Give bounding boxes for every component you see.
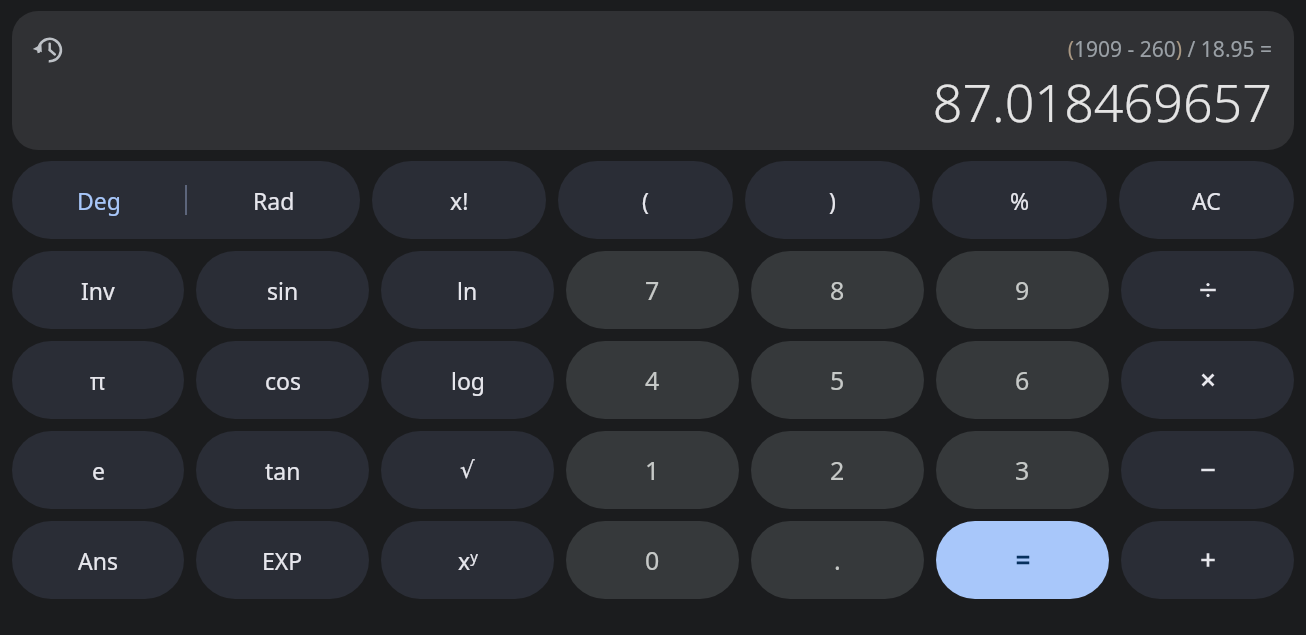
staticText: sin <box>267 275 299 306</box>
staticText: cos <box>265 365 301 396</box>
button[interactable]: ) <box>745 161 920 239</box>
button[interactable]: Minus <box>1121 431 1294 509</box>
button[interactable]: EXP <box>196 521 369 599</box>
button[interactable]: ln <box>381 251 554 329</box>
button[interactable]: 7 <box>566 251 739 329</box>
button[interactable]: History <box>28 30 68 70</box>
button[interactable]: 6 <box>936 341 1109 419</box>
staticText: 4 <box>645 363 660 397</box>
button[interactable]: 3 <box>936 431 1109 509</box>
button[interactable]: Equals <box>936 521 1109 599</box>
staticText: 0 <box>645 543 660 577</box>
staticText: √ <box>460 457 475 484</box>
staticText: % <box>1010 185 1030 216</box>
button[interactable]: % <box>932 161 1107 239</box>
staticText: Inv <box>81 275 115 306</box>
staticText: xy <box>458 545 478 576</box>
button[interactable]: x! <box>372 161 546 239</box>
staticText: x! <box>450 185 469 216</box>
button[interactable]: Multiply <box>1121 341 1294 419</box>
staticText: 2 <box>830 453 845 487</box>
staticText: log <box>451 365 485 396</box>
button[interactable]: log <box>381 341 554 419</box>
button[interactable]: 9 <box>936 251 1109 329</box>
staticText: 87.018469657 <box>932 66 1272 137</box>
button[interactable]: π <box>12 341 184 419</box>
button[interactable]: Plus <box>1121 521 1294 599</box>
staticText: Deg <box>77 185 121 216</box>
staticText: 6 <box>1015 363 1030 397</box>
button[interactable]: Ans <box>12 521 184 599</box>
button[interactable]: e <box>12 431 184 509</box>
button[interactable]: 5 <box>751 341 924 419</box>
staticText: EXP <box>262 545 303 576</box>
staticText: 3 <box>1015 453 1030 487</box>
staticText: ) <box>829 185 836 216</box>
button[interactable]: xy <box>381 521 554 599</box>
staticText: 1 <box>645 453 660 487</box>
staticText: Rad <box>253 185 295 216</box>
button[interactable]: 8 <box>751 251 924 329</box>
staticText: 5 <box>830 363 845 397</box>
staticText: e <box>92 455 105 486</box>
staticText: (1909 - 260) / 18.95 = <box>1067 35 1272 64</box>
button[interactable]: 1 <box>566 431 739 509</box>
staticText: π <box>90 365 106 396</box>
button[interactable]: Deg <box>12 161 360 239</box>
staticText: ( <box>642 185 649 216</box>
staticText: 9 <box>1015 273 1030 307</box>
button[interactable]: AC <box>1119 161 1294 239</box>
staticText: . <box>834 543 841 577</box>
button[interactable]: . <box>751 521 924 599</box>
staticText: AC <box>1192 185 1221 216</box>
button[interactable]: cos <box>196 341 369 419</box>
button[interactable]: Divide <box>1121 251 1294 329</box>
button[interactable]: 2 <box>751 431 924 509</box>
staticText: Ans <box>78 545 118 576</box>
button[interactable]: sin <box>196 251 369 329</box>
staticText: tan <box>265 455 301 486</box>
button[interactable]: 0 <box>566 521 739 599</box>
staticText: 7 <box>645 273 660 307</box>
button[interactable]: 4 <box>566 341 739 419</box>
button[interactable]: √ <box>381 431 554 509</box>
button[interactable]: tan <box>196 431 369 509</box>
staticText: ln <box>457 275 478 306</box>
button[interactable]: ( <box>558 161 733 239</box>
staticText: 8 <box>830 273 845 307</box>
button[interactable]: Inv <box>12 251 184 329</box>
